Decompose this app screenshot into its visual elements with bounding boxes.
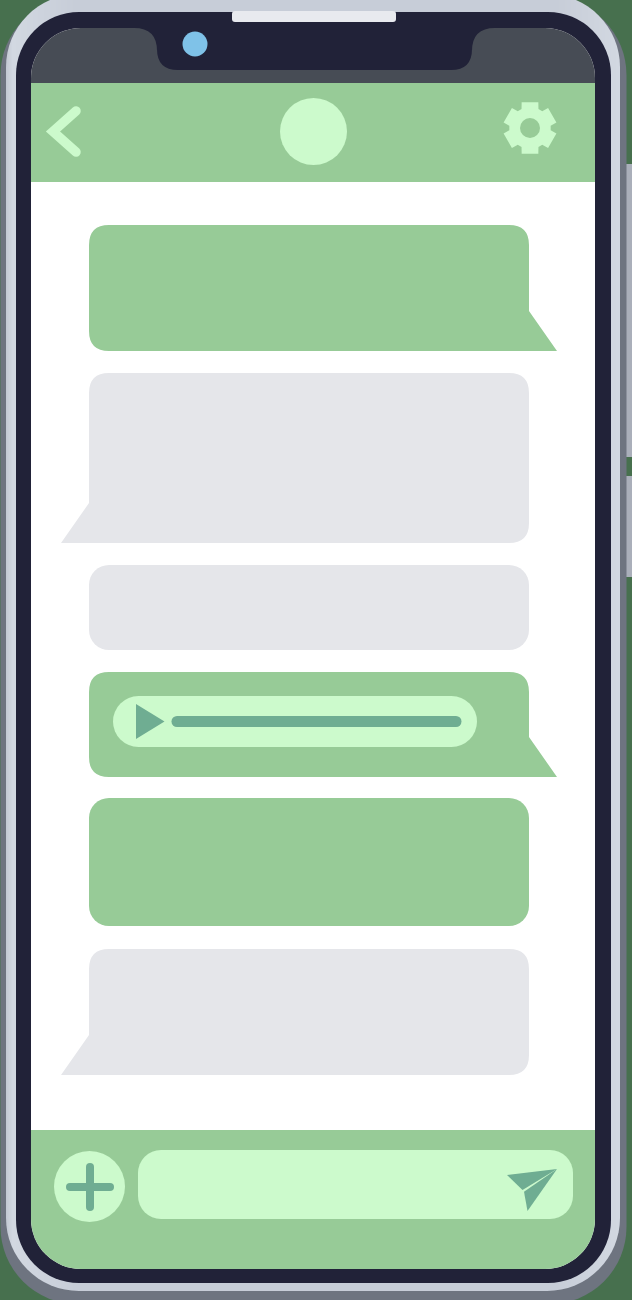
button[interactable]: [89, 798, 529, 926]
button[interactable]: Send: [138, 1150, 573, 1219]
button[interactable]: Settings: [492, 90, 568, 166]
button[interactable]: Add attachment: [54, 1151, 125, 1222]
button[interactable]: [61, 373, 529, 543]
button[interactable]: Contact avatar: [273, 91, 353, 171]
button[interactable]: Play voice message: [89, 672, 557, 777]
button[interactable]: [89, 225, 557, 351]
button[interactable]: Send: [507, 1169, 557, 1211]
button[interactable]: [61, 949, 529, 1075]
button[interactable]: Play voice message: [113, 696, 477, 747]
button[interactable]: Back: [31, 83, 107, 182]
